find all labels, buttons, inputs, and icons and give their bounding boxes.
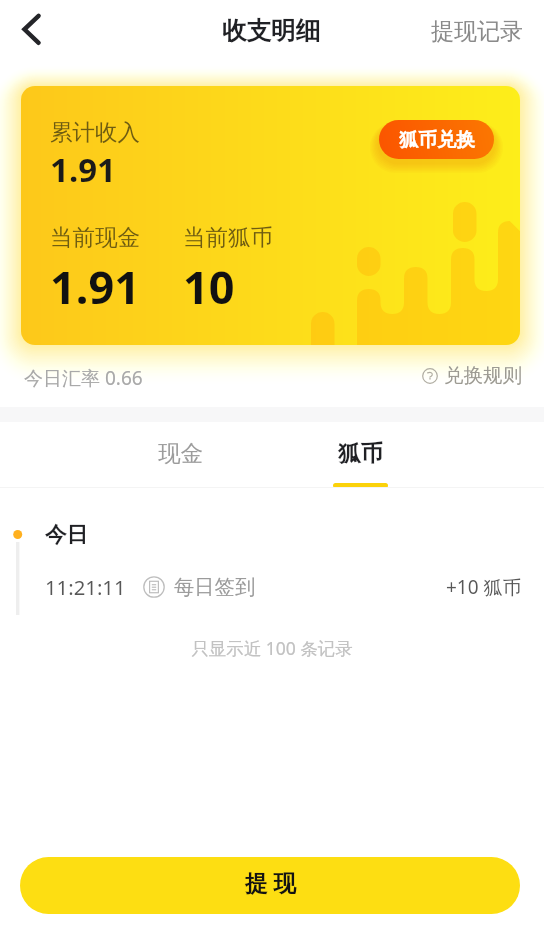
staticText: 狐币兑换 [399, 128, 475, 152]
staticText: 每日签到 [174, 574, 256, 600]
button[interactable]: 11:21:11 [0, 566, 544, 608]
staticText: 今日汇率 0.66 [24, 365, 143, 391]
staticText: 现金 [158, 439, 203, 467]
staticText: +10 狐币 [446, 574, 522, 600]
staticText: 狐币 [338, 439, 383, 467]
staticText: 累计收入 [50, 118, 140, 146]
staticText: 11:21:11 [45, 573, 126, 601]
staticText: 只显示近 100 条记录 [0, 636, 544, 660]
staticText: 1.91 [50, 256, 140, 317]
button[interactable]: Back [0, 0, 62, 62]
staticText: 1.91 [50, 147, 116, 192]
button[interactable]: 兑换规则 [412, 355, 532, 396]
button[interactable]: 狐币 [270, 422, 450, 488]
staticText: 今日 [45, 521, 88, 548]
staticText: 收支明细 [222, 15, 320, 46]
staticText: 10 [183, 256, 235, 317]
button[interactable]: 提现记录 [419, 8, 535, 55]
staticText: 提现记录 [431, 17, 523, 46]
button[interactable]: 现金 [90, 422, 270, 488]
staticText: 提 现 [245, 867, 296, 898]
staticText: 当前狐币 [183, 223, 273, 251]
staticText: 兑换规则 [444, 363, 522, 388]
button[interactable]: 提 现 [20, 857, 520, 914]
button[interactable]: 狐币兑换 [379, 120, 494, 159]
staticText: 当前现金 [50, 223, 140, 251]
